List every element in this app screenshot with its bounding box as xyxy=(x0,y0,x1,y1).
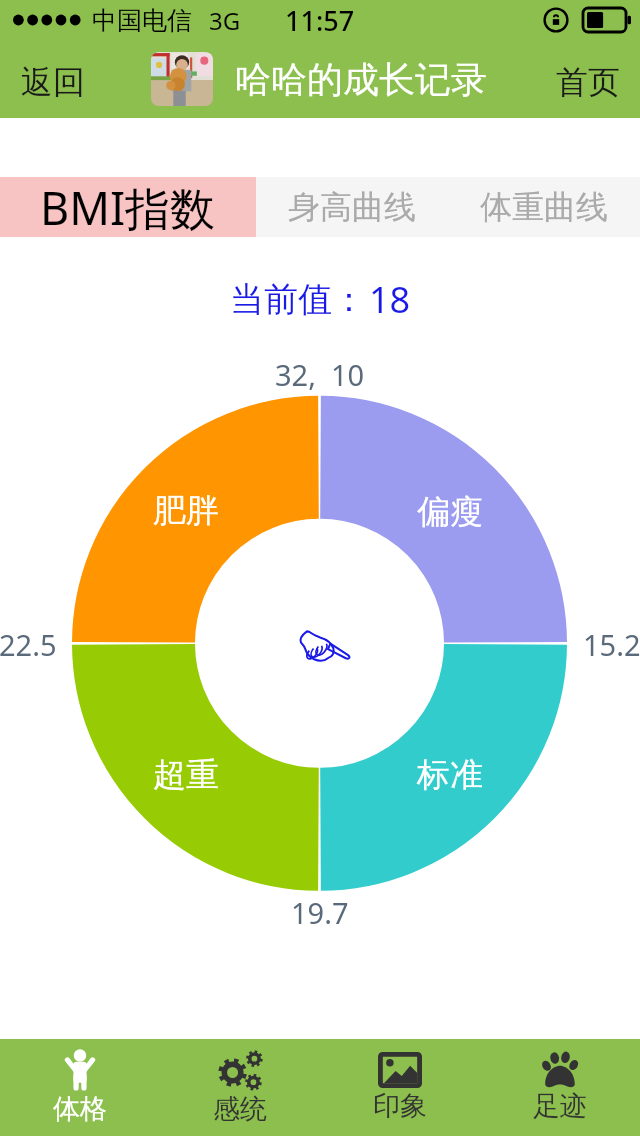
staticText: 肥胖 xyxy=(153,490,219,532)
staticText: 标准 xyxy=(417,754,483,796)
staticText: 18 xyxy=(369,275,411,324)
staticText: 身高曲线 xyxy=(288,187,416,227)
staticText: 19.7 xyxy=(291,893,349,932)
button[interactable]: 体重曲线 xyxy=(448,177,640,237)
staticText: 偏瘦 xyxy=(417,491,483,533)
staticText: 中国电信 xyxy=(92,5,192,36)
staticText: 超重 xyxy=(153,754,219,796)
button[interactable]: 体格 xyxy=(0,1039,160,1135)
staticText: BMI指数 xyxy=(40,177,216,237)
staticText: 体格 xyxy=(53,1092,107,1126)
staticText: 首页 xyxy=(556,62,620,102)
staticText: 足迹 xyxy=(533,1089,587,1123)
button[interactable]: 返回 xyxy=(17,41,89,117)
staticText: 3G xyxy=(209,4,241,37)
button[interactable]: Profile photo xyxy=(151,52,213,106)
button[interactable]: 身高曲线 xyxy=(256,177,448,237)
staticText: 当前值： xyxy=(230,278,366,321)
button[interactable]: BMI指数 xyxy=(0,177,256,237)
staticText: 感统 xyxy=(213,1092,267,1126)
staticText: 体重曲线 xyxy=(480,187,608,227)
button[interactable]: 首页 xyxy=(552,41,624,117)
staticText: 11:57 xyxy=(285,2,355,39)
staticText: 印象 xyxy=(373,1089,427,1123)
staticText: 22.5 xyxy=(0,625,57,664)
button[interactable]: 足迹 xyxy=(480,1039,640,1135)
staticText: 15.2 xyxy=(583,625,640,664)
staticText: 哈哈的成长记录 xyxy=(235,57,487,102)
button[interactable]: 感统 xyxy=(160,1039,320,1135)
button[interactable]: 印象 xyxy=(320,1039,480,1135)
staticText: 32, 10 xyxy=(275,355,365,394)
staticText: 返回 xyxy=(21,62,85,102)
